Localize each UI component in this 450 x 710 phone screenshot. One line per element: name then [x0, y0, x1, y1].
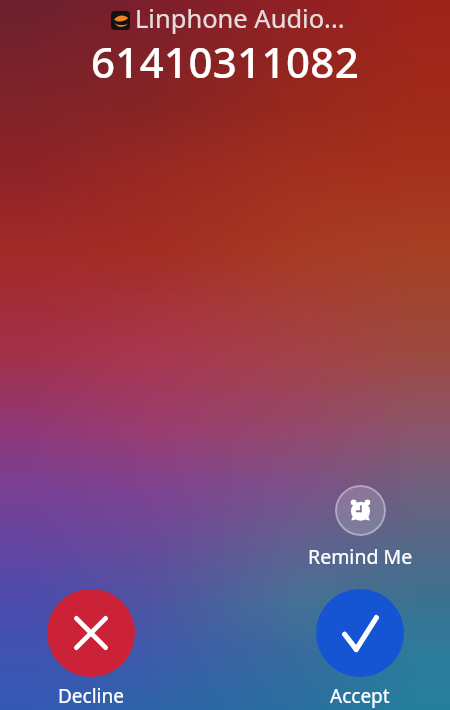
staticText: Decline	[58, 683, 124, 709]
staticText: Linphone Audio...	[135, 1, 345, 36]
staticText: 61410311082	[91, 33, 360, 90]
button[interactable]: Remind Me	[335, 485, 386, 536]
staticText: Remind Me	[308, 543, 413, 570]
button[interactable]: Accept	[316, 589, 404, 677]
staticText: Accept	[330, 683, 390, 709]
button[interactable]: Decline	[47, 589, 135, 677]
